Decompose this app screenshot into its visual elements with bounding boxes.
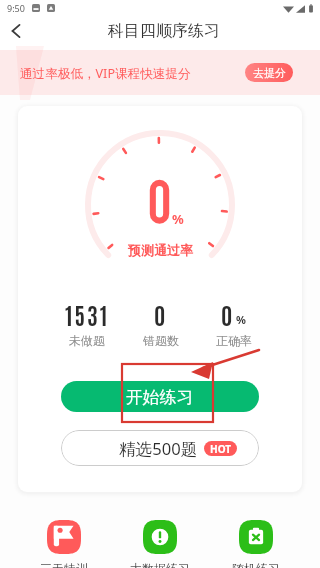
button[interactable]: 精选500题 (61, 430, 259, 466)
staticText: % (172, 210, 184, 228)
staticText: 未做题 (69, 333, 105, 348)
staticText: 9:50 (7, 2, 25, 14)
staticText: 随机练习 (232, 561, 280, 568)
staticText: 科目四顺序练习 (108, 21, 220, 41)
staticText: 开始练习 (126, 387, 194, 408)
staticText: HOT (210, 442, 232, 456)
button[interactable]: 随机练习 (232, 520, 280, 568)
staticText: 预测通过率 (128, 242, 193, 258)
button[interactable]: Back (0, 14, 33, 48)
staticText: 大数据练习 (130, 561, 190, 568)
button[interactable]: 大数据练习 (130, 520, 190, 568)
button[interactable]: 开始练习 (61, 381, 259, 412)
staticText: 0 (154, 299, 168, 329)
staticText: 三天特训 (40, 561, 88, 568)
staticText: 错题数 (143, 333, 179, 348)
staticText: % (236, 312, 246, 327)
staticText: 正确率 (216, 333, 252, 348)
staticText: 精选500题 (119, 437, 198, 460)
staticText: 1531 (65, 299, 110, 329)
button[interactable]: 去提分 (245, 63, 293, 82)
staticText: 去提分 (253, 66, 286, 80)
staticText: 通过率极低，VIP课程快速提分 (20, 65, 191, 82)
button[interactable]: 三天特训 (40, 520, 88, 568)
staticText: 0 (221, 299, 235, 329)
